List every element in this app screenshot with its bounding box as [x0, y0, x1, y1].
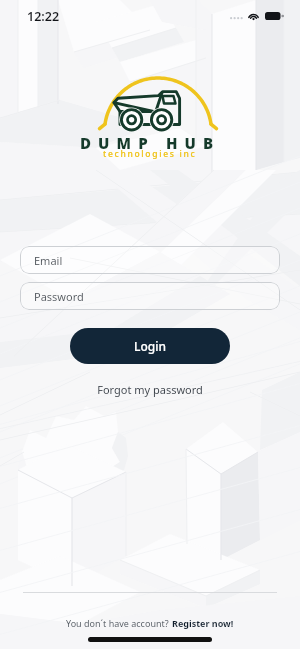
button[interactable]: Register now!: [172, 617, 234, 629]
staticText: technologies inc: [103, 148, 197, 160]
button[interactable]: Email: [20, 246, 280, 274]
button[interactable]: Password: [20, 282, 280, 310]
staticText: 12:22: [27, 8, 60, 25]
staticText: You don´t have account?: [66, 617, 172, 629]
staticText: H U B: [166, 133, 215, 153]
button[interactable]: Forgot my password: [0, 382, 300, 397]
staticText: Login: [134, 338, 166, 354]
staticText: D U M P: [80, 133, 150, 153]
button[interactable]: Login: [70, 328, 230, 364]
staticText: Email: [34, 253, 63, 268]
staticText: Password: [34, 289, 84, 304]
